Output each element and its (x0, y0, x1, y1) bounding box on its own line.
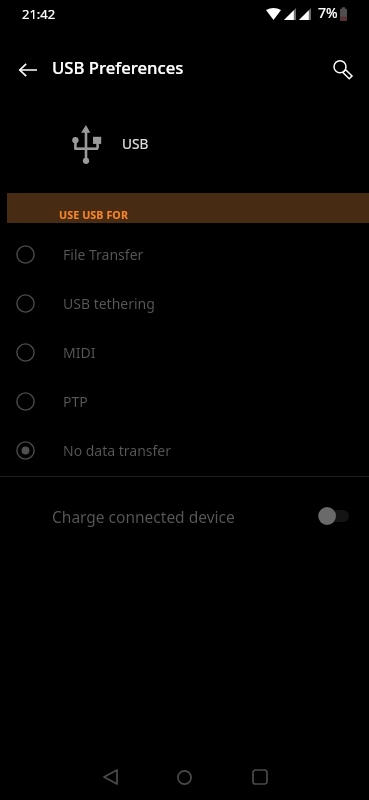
button[interactable]: PTP (0, 377, 369, 426)
button[interactable]: Navigate up (8, 50, 48, 90)
staticText: 21:42 (22, 5, 56, 23)
button[interactable]: File Transfer (0, 230, 369, 279)
button[interactable]: Charge connected device (0, 489, 369, 543)
button[interactable]: MIDI (0, 328, 369, 377)
staticText: Charge connected device (52, 506, 235, 527)
staticText: File Transfer (63, 245, 144, 264)
staticText: USE USB FOR (59, 208, 129, 223)
staticText: MIDI (63, 343, 96, 362)
button[interactable]: USB tethering (0, 279, 369, 328)
staticText: No data transfer (63, 441, 172, 460)
staticText: 7% (318, 3, 338, 22)
button[interactable]: Search (323, 50, 363, 90)
button[interactable]: No data transfer (0, 426, 369, 475)
button[interactable]: Recent apps (237, 754, 283, 800)
staticText: USB Preferences (52, 56, 184, 79)
button[interactable]: Home (161, 754, 207, 800)
staticText: USB (122, 134, 149, 153)
staticText: PTP (63, 392, 88, 411)
staticText: USB tethering (63, 294, 155, 313)
button[interactable]: Back (87, 754, 133, 800)
